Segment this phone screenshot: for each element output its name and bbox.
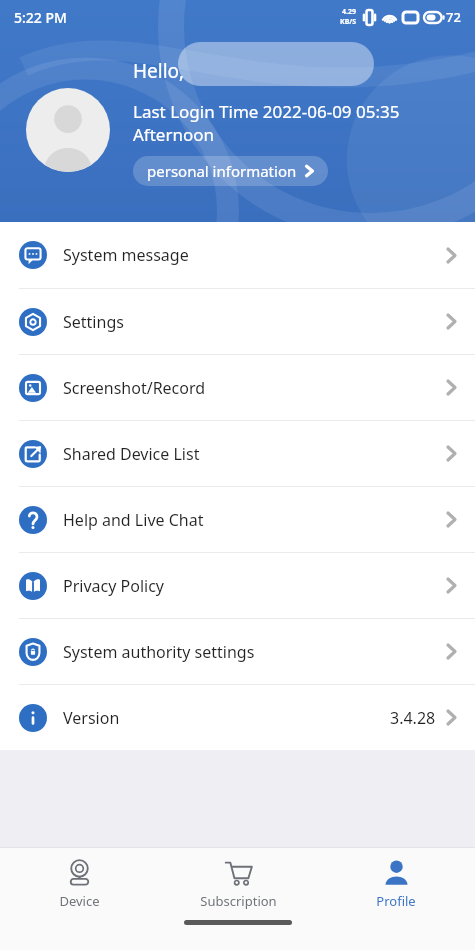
staticText: System authority settings <box>63 641 255 663</box>
staticText: Screenshot/Record <box>63 377 206 399</box>
staticText: Profile <box>376 892 416 910</box>
button[interactable]: Subscription <box>159 848 317 920</box>
other: Device <box>65 858 94 887</box>
staticText: System message <box>63 244 189 266</box>
staticText: personal information <box>147 161 297 181</box>
staticText: Help and Live Chat <box>63 509 204 531</box>
button[interactable]: System authority settings <box>0 619 475 684</box>
staticText: 5:22 PM <box>14 8 67 27</box>
other: Subscription <box>224 858 253 887</box>
button[interactable]: personal information <box>133 156 328 186</box>
button[interactable]: Screenshot/Record <box>0 355 475 420</box>
staticText: Settings <box>63 311 124 333</box>
staticText: Hello, <box>133 58 185 84</box>
button[interactable]: Avatar <box>26 88 110 172</box>
staticText: 72 <box>446 8 461 26</box>
staticText: 4.29 <box>342 7 356 17</box>
button[interactable]: Privacy Policy <box>0 553 475 618</box>
staticText: KB/S <box>340 17 357 27</box>
staticText: Device <box>59 892 100 910</box>
button[interactable]: Shared Device List <box>0 421 475 486</box>
staticText: Privacy Policy <box>63 575 164 597</box>
button[interactable]: Profile <box>317 848 475 920</box>
button[interactable]: Help and Live Chat <box>0 487 475 552</box>
button[interactable]: Version <box>0 685 475 750</box>
staticText: Version <box>63 707 120 729</box>
button[interactable]: Device <box>0 848 159 920</box>
other: Profile <box>382 858 411 887</box>
button[interactable]: Settings <box>0 289 475 354</box>
staticText: Shared Device List <box>63 443 200 465</box>
staticText: 3.4.28 <box>390 707 436 729</box>
button[interactable]: System message <box>0 222 475 288</box>
staticText: Subscription <box>200 892 277 910</box>
staticText: Last Login Time 2022-06-09 05:35 Afterno… <box>133 100 400 146</box>
